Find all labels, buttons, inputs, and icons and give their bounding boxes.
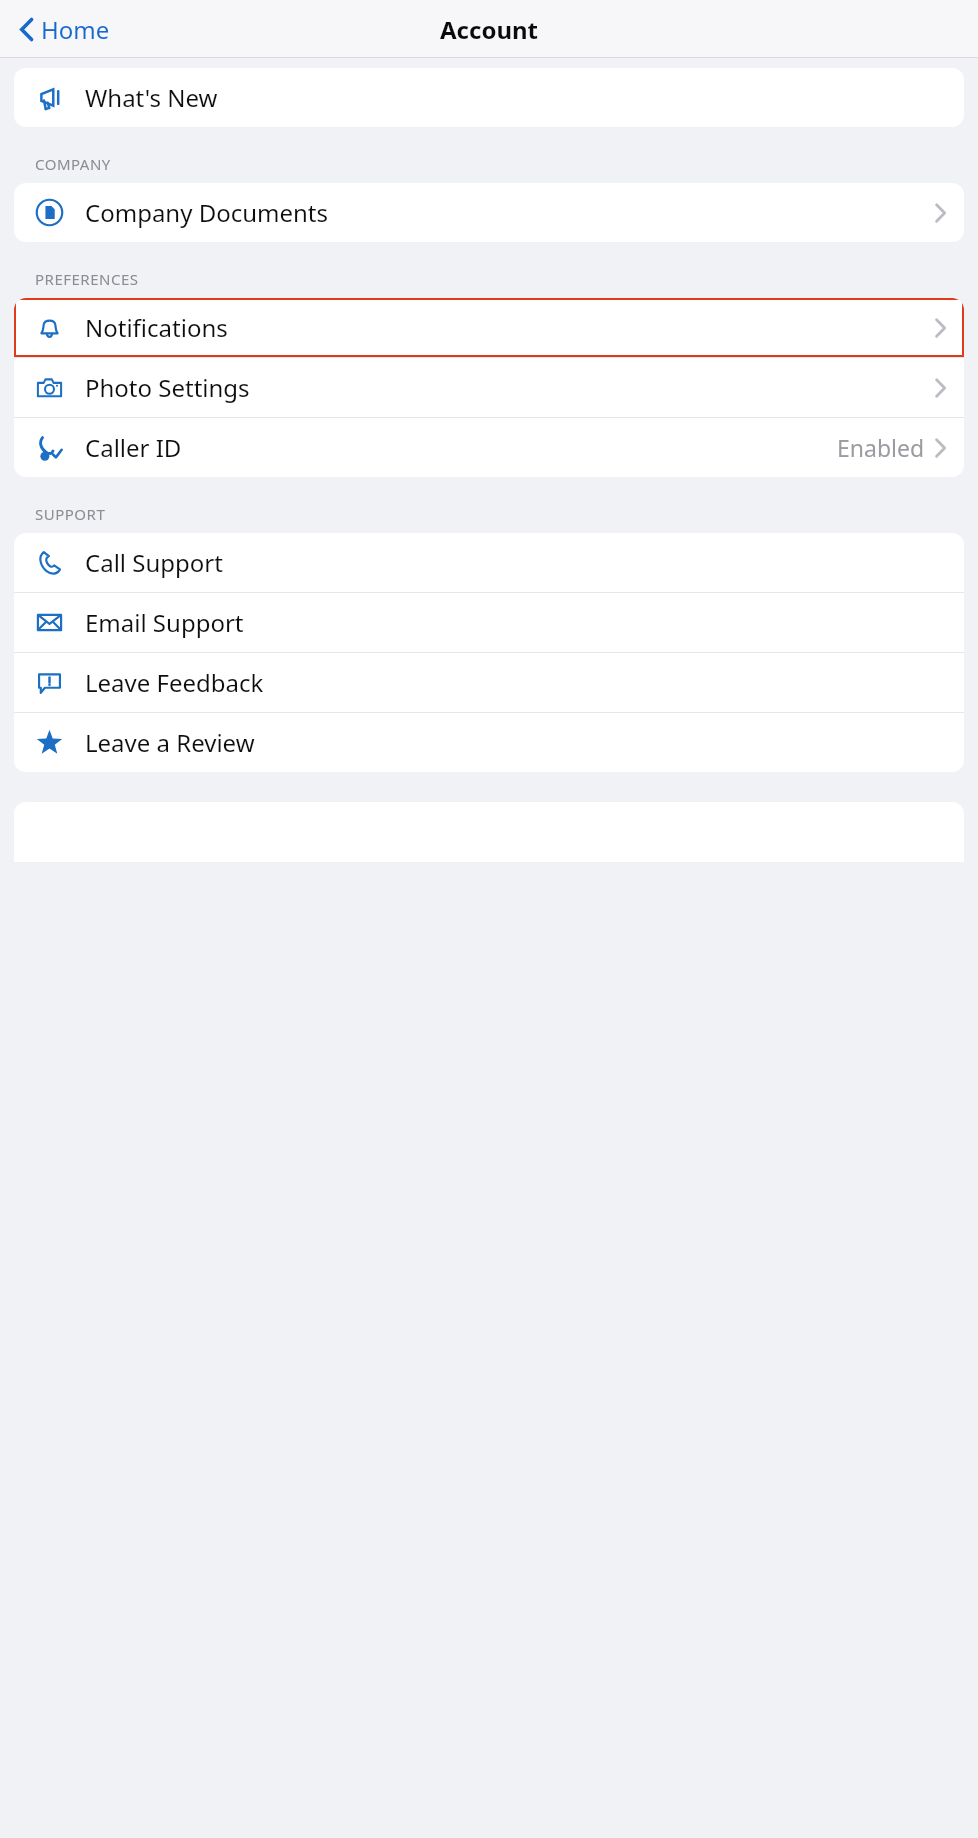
staticText: Leave a Review <box>85 726 255 759</box>
staticText: PREFERENCES <box>35 269 139 289</box>
button[interactable]: Caller ID <box>14 418 964 477</box>
staticText: Home <box>41 13 110 46</box>
staticText: Call Support <box>85 546 223 579</box>
staticText: Company Documents <box>85 196 329 229</box>
staticText: SUPPORT <box>35 504 106 524</box>
staticText: Caller ID <box>85 431 182 464</box>
staticText: Notifications <box>85 311 228 344</box>
button[interactable]: Home <box>12 8 116 51</box>
staticText: Leave Feedback <box>85 666 264 699</box>
staticText: Enabled <box>837 432 925 463</box>
staticText: COMPANY <box>35 154 111 174</box>
other: Company Documents <box>35 198 64 227</box>
other: Photo Settings <box>35 373 64 402</box>
button[interactable]: What's New <box>14 68 964 127</box>
button[interactable]: Leave Feedback <box>14 653 964 712</box>
other: Leave Feedback <box>35 668 64 697</box>
staticText: Photo Settings <box>85 371 250 404</box>
button[interactable]: Notifications <box>14 298 964 357</box>
staticText: Account <box>440 13 538 46</box>
other: Caller ID <box>35 433 64 462</box>
button[interactable]: Call Support <box>14 533 964 592</box>
button[interactable]: Company Documents <box>14 183 964 242</box>
other: Leave a Review <box>35 728 64 757</box>
other: Notifications <box>35 313 64 342</box>
button[interactable]: Leave a Review <box>14 713 964 772</box>
other: Call Support <box>35 548 64 577</box>
other: Email Support <box>35 608 64 637</box>
other: What's New <box>35 83 64 112</box>
staticText: What's New <box>85 81 218 114</box>
staticText: Email Support <box>85 606 244 639</box>
button[interactable]: Email Support <box>14 593 964 652</box>
button[interactable]: Photo Settings <box>14 358 964 417</box>
